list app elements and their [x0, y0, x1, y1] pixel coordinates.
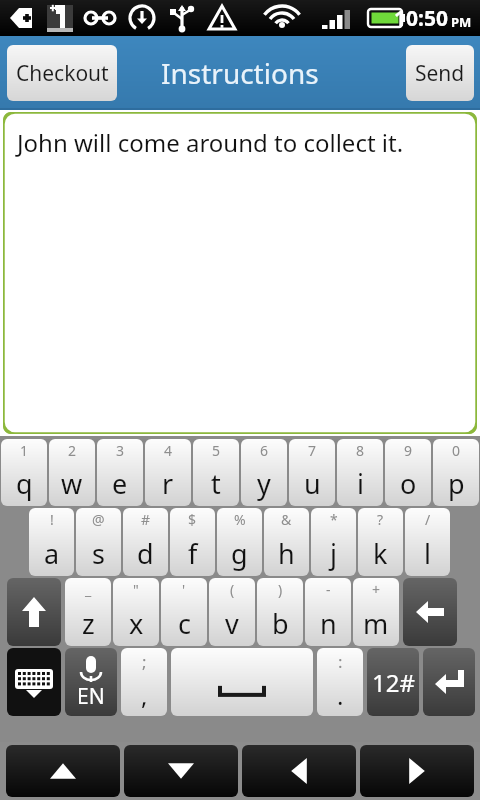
staticText: & [281, 510, 292, 529]
staticText: 9 [404, 441, 413, 460]
staticText: - [326, 580, 331, 599]
staticText: EN [77, 682, 105, 711]
button[interactable]: 9 [385, 439, 431, 506]
staticText: John will come around to collect it. [17, 126, 404, 159]
staticText: + [372, 580, 381, 599]
staticText: / [425, 510, 431, 529]
staticText: PM [451, 13, 472, 31]
staticText: e [112, 465, 128, 502]
staticText: t [211, 465, 221, 502]
staticText: b [272, 605, 289, 642]
button[interactable]: ; [121, 648, 167, 716]
button[interactable]: 12# [367, 648, 419, 716]
button[interactable]: % [217, 508, 262, 576]
button[interactable]: 0 [433, 439, 479, 506]
button[interactable]: Shift [7, 578, 61, 646]
staticText: ) [278, 580, 283, 599]
staticText: , [141, 679, 148, 712]
staticText: 8 [356, 441, 365, 460]
staticText: r [162, 465, 174, 502]
staticText: y [257, 465, 271, 502]
staticText: Send [415, 59, 465, 88]
staticText: ? [377, 510, 384, 529]
button[interactable]: 1 [1, 439, 47, 506]
staticText: w [61, 465, 83, 502]
staticText: q [16, 465, 33, 502]
button[interactable]: 7 [289, 439, 335, 506]
button[interactable]: 2 [49, 439, 95, 506]
staticText: 7 [308, 441, 317, 460]
staticText: * [330, 510, 338, 529]
button[interactable]: " [113, 578, 159, 646]
button[interactable]: Checkout [7, 45, 117, 101]
button[interactable]: - [305, 578, 351, 646]
staticText: 1 [20, 441, 29, 460]
button[interactable]: Backspace [403, 578, 457, 646]
button[interactable]: Send [406, 45, 474, 101]
staticText: ; [142, 650, 147, 673]
staticText: s [92, 535, 105, 572]
button[interactable]: 8 [337, 439, 383, 506]
button[interactable]: @ [76, 508, 121, 576]
staticText: Checkout [16, 59, 109, 88]
button[interactable]: / [405, 508, 450, 576]
button[interactable]: _ [65, 578, 111, 646]
button[interactable]: Down [124, 745, 238, 797]
staticText: @ [92, 510, 105, 529]
button[interactable]: ) [257, 578, 303, 646]
staticText: ! [50, 510, 54, 529]
button[interactable]: # [123, 508, 168, 576]
staticText: ' [182, 580, 186, 599]
staticText: v [225, 605, 239, 642]
staticText: 0 [452, 441, 461, 460]
staticText: 5 [212, 441, 221, 460]
staticText: d [137, 535, 154, 572]
staticText: m [363, 605, 389, 642]
staticText: 3 [116, 441, 125, 460]
staticText: o [400, 465, 417, 502]
button[interactable]: & [264, 508, 309, 576]
button[interactable]: * [311, 508, 356, 576]
button[interactable]: 6 [241, 439, 287, 506]
staticText: z [82, 605, 95, 642]
staticText: j [330, 535, 337, 572]
staticText: 12# [372, 666, 415, 699]
staticText: x [129, 605, 144, 642]
staticText: Instructions [161, 54, 319, 92]
staticText: n [320, 605, 337, 642]
button[interactable]: + [353, 578, 399, 646]
staticText: # [141, 510, 151, 529]
staticText: c [178, 605, 191, 642]
button[interactable]: ? [358, 508, 403, 576]
staticText: i [357, 465, 364, 502]
button[interactable]: Right [360, 745, 474, 797]
button[interactable]: Left [242, 745, 356, 797]
button[interactable]: ! [29, 508, 74, 576]
staticText: u [304, 465, 321, 502]
button[interactable]: ' [161, 578, 207, 646]
staticText: . [337, 679, 344, 712]
button[interactable]: 3 [97, 439, 143, 506]
button[interactable]: $ [170, 508, 215, 576]
staticText: k [373, 535, 388, 572]
button[interactable]: Space [171, 648, 313, 716]
button[interactable]: Enter [423, 648, 475, 716]
staticText: 2 [68, 441, 77, 460]
staticText: l [424, 535, 431, 572]
staticText: ( [230, 580, 235, 599]
staticText: 10:50 [394, 4, 448, 33]
staticText: f [188, 535, 198, 572]
button[interactable]: Voice input, English [65, 648, 117, 716]
staticText: p [448, 465, 465, 502]
button[interactable]: : [317, 648, 363, 716]
button[interactable]: 4 [145, 439, 191, 506]
staticText: g [231, 535, 248, 572]
button[interactable]: 5 [193, 439, 239, 506]
staticText: 6 [260, 441, 269, 460]
staticText: % [234, 510, 246, 529]
button[interactable]: ( [209, 578, 255, 646]
button[interactable]: Hide keyboard [7, 648, 61, 716]
staticText: 4 [164, 441, 173, 460]
button[interactable]: Up [6, 745, 120, 797]
staticText: " [133, 580, 139, 599]
